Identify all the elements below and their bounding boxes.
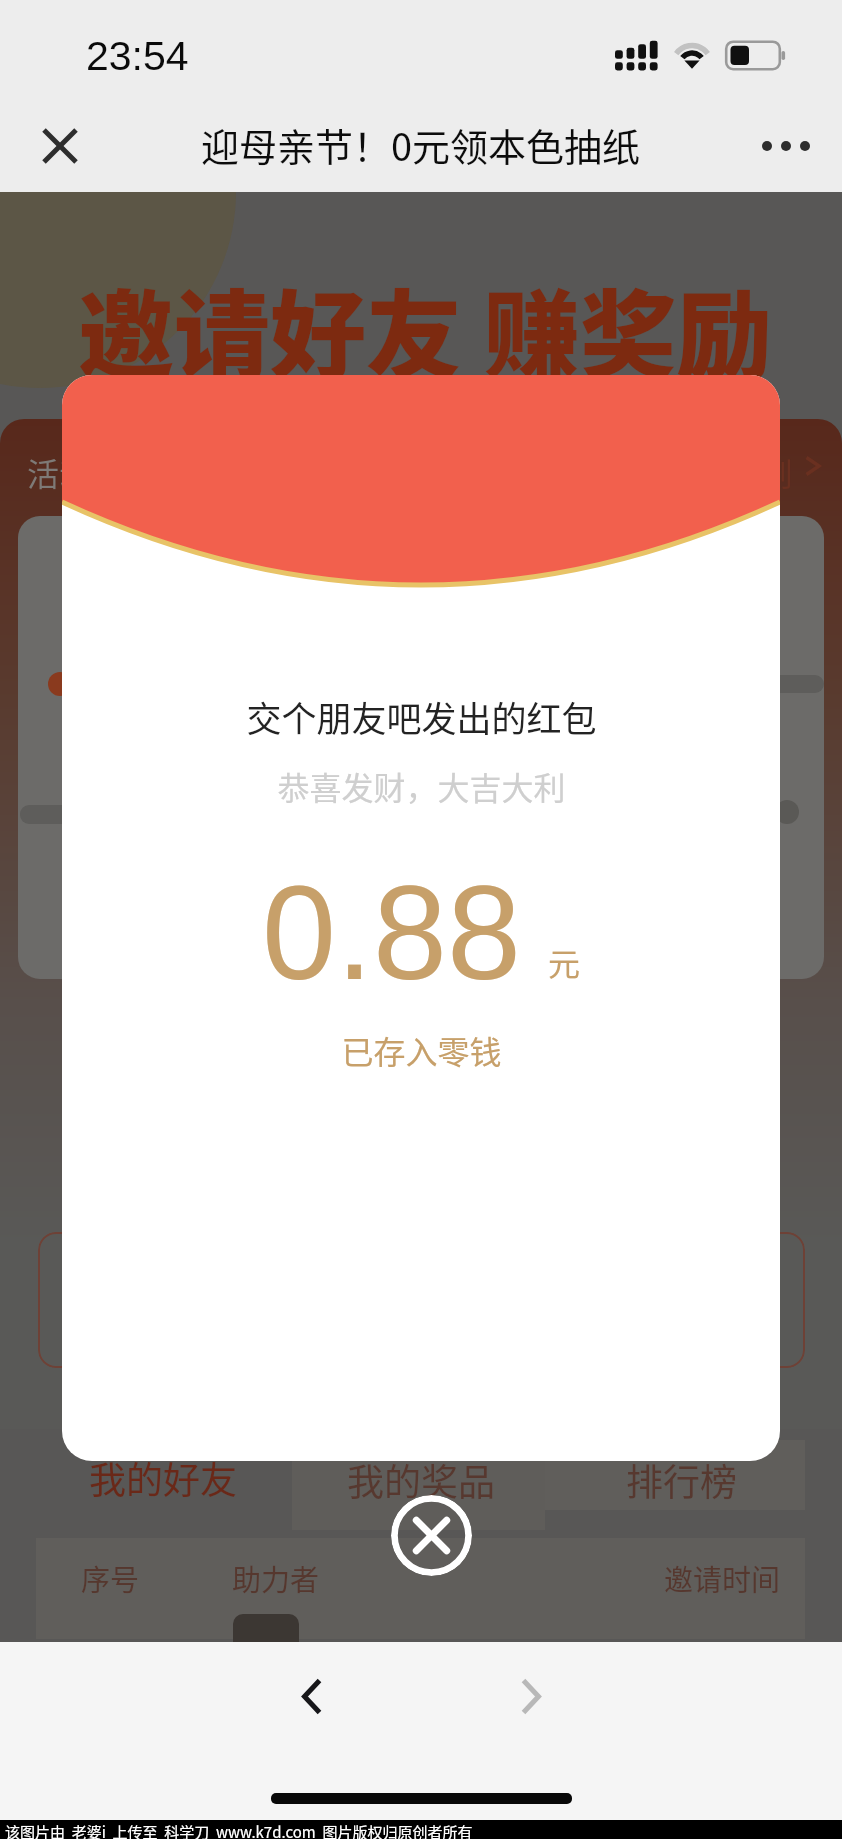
staticText: 排行榜 (626, 1453, 737, 1507)
staticText: 元 (548, 939, 581, 985)
button[interactable]: 后退 (272, 1656, 352, 1736)
staticText: 交个朋友吧发出的红包 (246, 691, 597, 742)
staticText: 助力者 (232, 1557, 320, 1599)
button[interactable]: 前进 (491, 1656, 571, 1736)
button[interactable]: 关闭 (26, 112, 94, 180)
button[interactable]: 更多 (752, 112, 820, 180)
staticText: 活动规则 (665, 449, 794, 495)
staticText: 迎母亲节！0元领本色抽纸 (201, 117, 641, 172)
staticText: 已存入零钱 (341, 1027, 502, 1073)
staticText: 序号 (81, 1557, 140, 1599)
staticText: 恭喜发财，大吉大利 (277, 763, 566, 809)
staticText: 活动规则 (27, 449, 156, 495)
staticText: 邀请好友 赚奖励 (78, 259, 772, 398)
staticText: 我的好友 (89, 1451, 237, 1505)
staticText: 0.88 (262, 859, 521, 1008)
staticText: 该图片由 老婆i 上传至 科学刀 www.k7d.com 图片版权归原创者所有 (5, 1821, 473, 1839)
button[interactable]: 关闭 (391, 1495, 472, 1576)
staticText: 邀请时间 (664, 1557, 781, 1599)
staticText: 23:54 (86, 33, 189, 79)
staticText: 我的奖品 (347, 1453, 495, 1507)
button[interactable]: 交个朋友吧发出的红包 (62, 375, 780, 1461)
